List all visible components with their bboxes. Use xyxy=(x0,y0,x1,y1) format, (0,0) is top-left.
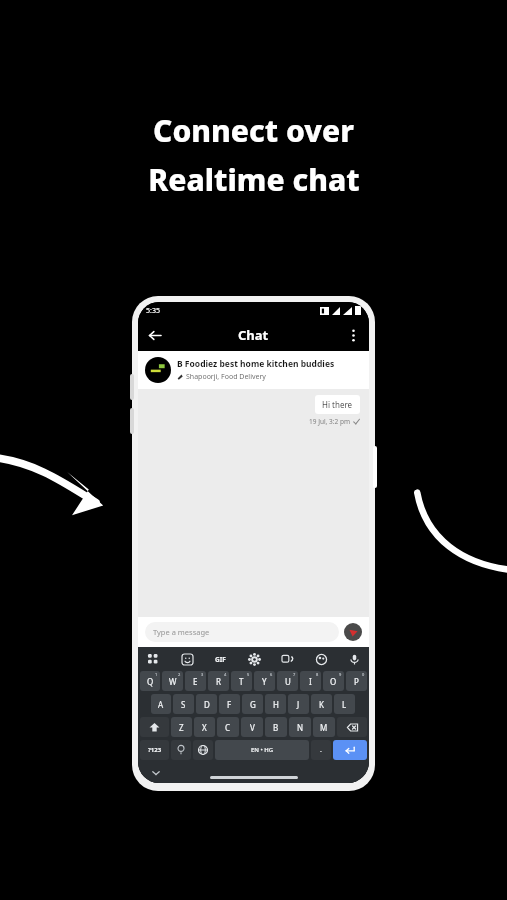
staticText: P xyxy=(354,676,359,687)
staticText: 8 xyxy=(316,672,319,677)
staticText: Connect over xyxy=(153,110,354,151)
button[interactable]: Theme xyxy=(312,650,330,668)
button[interactable]: Enter xyxy=(333,740,367,760)
button[interactable]: W xyxy=(162,671,183,691)
staticText: Y xyxy=(262,676,267,687)
staticText: K xyxy=(319,699,324,710)
staticText: 6 xyxy=(270,672,273,677)
button[interactable]: Settings xyxy=(245,650,263,668)
staticText: L xyxy=(342,699,347,710)
button[interactable]: Hi there xyxy=(315,395,360,414)
button[interactable]: M xyxy=(313,717,335,737)
staticText: 5 xyxy=(247,672,250,677)
staticText: 0 xyxy=(362,672,365,677)
button[interactable]: G xyxy=(242,694,263,714)
button[interactable]: More options xyxy=(337,319,369,351)
button[interactable]: O xyxy=(323,671,344,691)
staticText: V xyxy=(250,722,255,733)
staticText: E xyxy=(193,676,198,687)
staticText: M xyxy=(320,722,328,733)
button[interactable]: P xyxy=(346,671,367,691)
staticText: 7 xyxy=(293,672,296,677)
staticText: 5:35 xyxy=(146,306,160,316)
staticText: B Foodiez best home kitchen buddies xyxy=(177,358,335,370)
staticText: F xyxy=(227,699,232,710)
staticText: . xyxy=(320,745,322,755)
staticText: O xyxy=(330,676,337,687)
staticText: D xyxy=(204,699,210,710)
staticText: 3 xyxy=(201,672,204,677)
button[interactable]: T xyxy=(231,671,252,691)
staticText: W xyxy=(169,676,177,687)
button[interactable]: U xyxy=(277,671,298,691)
button[interactable]: S xyxy=(173,694,194,714)
button[interactable]: Z xyxy=(171,717,192,737)
button[interactable]: Shift xyxy=(140,717,169,737)
staticText: 2 xyxy=(178,672,181,677)
staticText: ?123 xyxy=(148,746,162,754)
button[interactable]: Translate xyxy=(278,650,296,668)
button[interactable]: Backspace xyxy=(337,717,367,737)
staticText: EN • HG xyxy=(251,746,274,754)
button[interactable]: I xyxy=(300,671,321,691)
button[interactable]: B Foodiez best home kitchen buddies xyxy=(138,351,369,389)
button[interactable]: A xyxy=(151,694,171,714)
staticText: G xyxy=(250,699,256,710)
staticText: Hi there xyxy=(322,399,353,410)
staticText: R xyxy=(216,676,221,687)
staticText: B xyxy=(273,722,279,733)
staticText: 4 xyxy=(224,672,227,677)
staticText: J xyxy=(297,699,300,710)
button[interactable]: Emoji xyxy=(171,740,191,760)
staticText: H xyxy=(273,699,279,710)
button[interactable]: Send xyxy=(344,623,362,641)
button[interactable]: H xyxy=(265,694,286,714)
staticText: Type a message xyxy=(153,627,210,637)
button[interactable]: Stickers xyxy=(178,650,196,668)
staticText: Realtime chat xyxy=(148,159,360,200)
staticText: 1 xyxy=(155,672,158,677)
staticText: S xyxy=(181,699,186,710)
button[interactable]: X xyxy=(194,717,215,737)
staticText: T xyxy=(239,676,244,687)
button[interactable]: Type a message xyxy=(145,622,339,642)
staticText: GIF xyxy=(215,655,226,664)
staticText: I xyxy=(309,676,312,687)
button[interactable]: E xyxy=(185,671,206,691)
staticText: U xyxy=(285,676,291,687)
staticText: X xyxy=(202,722,207,733)
button[interactable]: GIF xyxy=(211,650,229,668)
staticText: Z xyxy=(179,722,184,733)
button[interactable]: N xyxy=(289,717,311,737)
staticText: A xyxy=(158,699,164,710)
button[interactable]: C xyxy=(217,717,239,737)
button[interactable]: Back xyxy=(138,319,170,351)
button[interactable]: Apps xyxy=(144,650,162,668)
button[interactable]: Language xyxy=(193,740,213,760)
button[interactable]: L xyxy=(334,694,355,714)
button[interactable]: EN • HG xyxy=(215,740,309,760)
button[interactable]: V xyxy=(241,717,263,737)
button[interactable]: Y xyxy=(254,671,275,691)
button[interactable]: Q xyxy=(140,671,160,691)
staticText: 19 Jul, 3:2 pm xyxy=(309,417,350,426)
button[interactable]: . xyxy=(311,740,331,760)
button[interactable]: Voice input xyxy=(345,650,363,668)
button[interactable]: F xyxy=(219,694,240,714)
button[interactable]: K xyxy=(311,694,332,714)
button[interactable]: ?123 xyxy=(140,740,169,760)
staticText: Q xyxy=(147,676,154,687)
button[interactable]: B xyxy=(265,717,287,737)
staticText: C xyxy=(225,722,231,733)
staticText: Chat xyxy=(238,326,269,344)
staticText: N xyxy=(297,722,304,733)
button[interactable]: J xyxy=(288,694,309,714)
staticText: 9 xyxy=(339,672,342,677)
staticText: Shapoorji, Food Delivery xyxy=(186,372,266,382)
button[interactable]: R xyxy=(208,671,229,691)
button[interactable]: D xyxy=(196,694,217,714)
